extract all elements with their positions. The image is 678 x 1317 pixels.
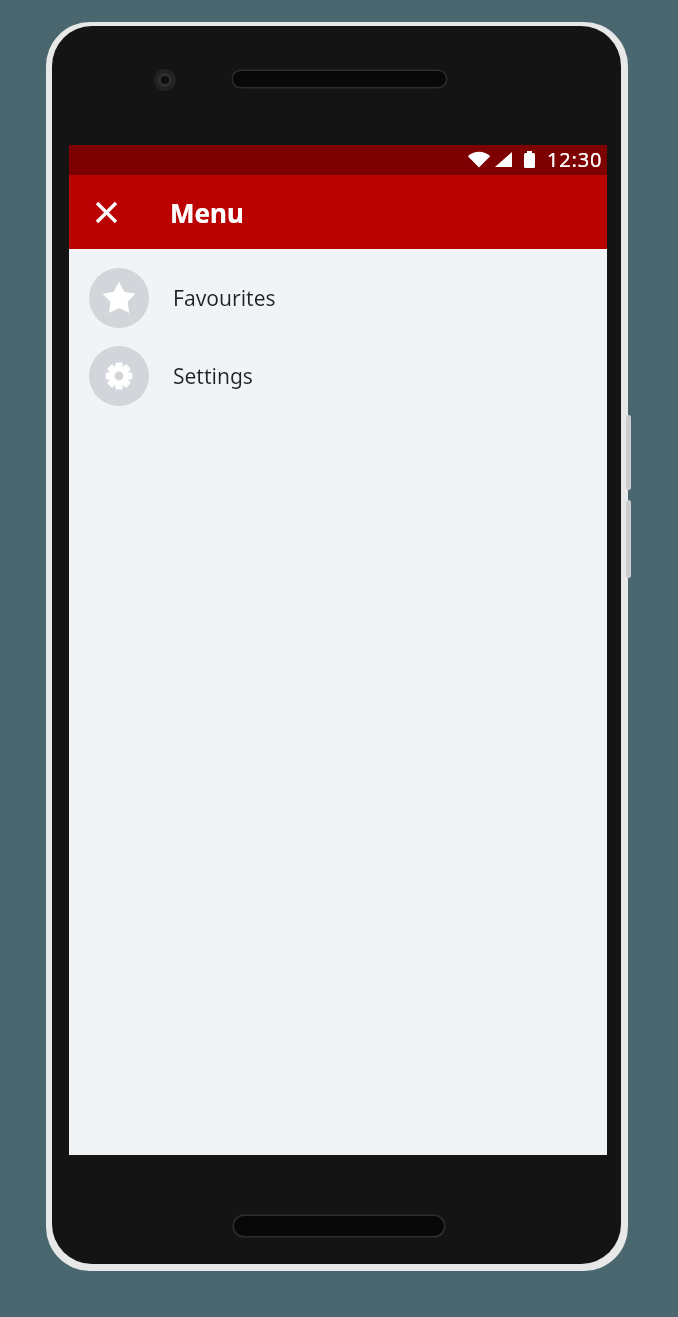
button[interactable]: Favourites bbox=[89, 268, 607, 328]
staticText: Menu bbox=[170, 195, 244, 230]
staticText: 12:30 bbox=[547, 146, 603, 173]
button[interactable]: Settings bbox=[89, 346, 607, 406]
staticText: Settings bbox=[173, 362, 253, 391]
button[interactable] bbox=[82, 188, 130, 236]
staticText: Favourites bbox=[173, 284, 276, 313]
